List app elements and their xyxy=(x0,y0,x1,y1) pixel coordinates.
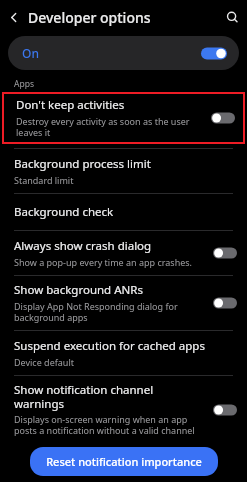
button[interactable]: Background check xyxy=(0,194,247,230)
button[interactable]: Always show crash dialog xyxy=(0,231,247,275)
button[interactable]: Back xyxy=(0,3,28,31)
staticText: Always show crash dialog xyxy=(14,238,152,254)
button[interactable]: Suspend execution for cached apps xyxy=(0,331,247,375)
staticText: Suspend execution for cached apps xyxy=(14,338,205,354)
staticText: Device default xyxy=(14,356,74,368)
button[interactable]: Don't keep activities xyxy=(2,92,245,144)
staticText: Show notification channel warnings xyxy=(14,382,205,411)
staticText: Display App Not Responding dialog for ba… xyxy=(14,300,205,324)
button[interactable]: Search xyxy=(217,2,247,32)
button[interactable]: Show background ANRs xyxy=(0,276,247,330)
staticText: Background check xyxy=(14,204,114,220)
staticText: Show a pop-up every time an app crashes. xyxy=(14,256,193,268)
button[interactable]: Background process limit xyxy=(0,149,247,193)
staticText: Developer options xyxy=(28,8,217,27)
button[interactable]: Show notification channel warnings xyxy=(0,376,247,441)
button[interactable]: Reset notification importance xyxy=(30,447,218,476)
staticText: On xyxy=(22,45,201,61)
staticText: Show background ANRs xyxy=(14,282,143,298)
staticText: Standard limit xyxy=(14,174,74,186)
staticText: Destroy every activity as soon as the us… xyxy=(16,115,203,139)
staticText: Reset notification importance xyxy=(46,454,202,469)
staticText: Displays on-screen warning when an app p… xyxy=(14,413,205,437)
staticText: Background process limit xyxy=(14,156,151,172)
staticText: Apps xyxy=(14,78,34,90)
button[interactable]: On xyxy=(8,36,239,70)
staticText: Don't keep activities xyxy=(16,97,125,113)
